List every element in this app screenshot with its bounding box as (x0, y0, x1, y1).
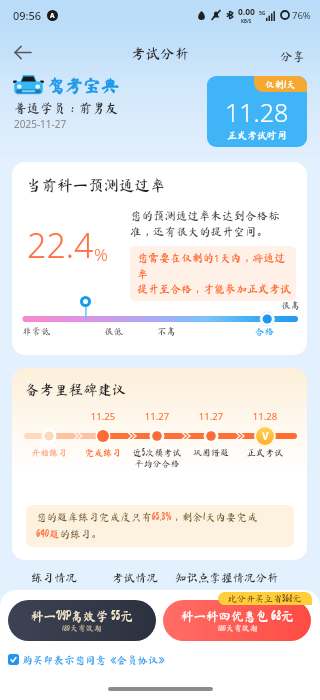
staticText: 11.25 (86, 410, 120, 423)
staticText: 备考里程碑建议 (25, 382, 127, 397)
button[interactable]: 考试情况 (112, 572, 158, 583)
button[interactable]: 知识点掌握情况分析 (175, 572, 279, 583)
staticText: 很低 (104, 327, 124, 336)
staticText: 2025-11-27 (14, 117, 67, 131)
staticText: 22.4 (27, 222, 94, 268)
staticText: 当前科一预测通过率 (26, 177, 166, 193)
staticText: 您的题库练习完成度只有65.3%，剩余1天内要完成 640题的练习。 (36, 512, 258, 539)
staticText: 巩固错题 (184, 448, 238, 457)
button[interactable]: 仅剩1天 (207, 76, 307, 147)
staticText: 您需要在仅剩的1天内，将通过率 提升至合格，才能参加正式考试 (137, 252, 291, 295)
staticText: 考试分析 (131, 46, 189, 61)
staticText: 完成练习 (76, 448, 130, 457)
staticText: A (50, 11, 55, 20)
staticText: 11.28 (225, 95, 289, 129)
staticText: 合格 (255, 327, 275, 336)
staticText: 仅剩1天 (265, 80, 296, 89)
staticText: 76% (292, 9, 311, 22)
staticText: 09:56 (13, 8, 42, 23)
staticText: 11.27 (140, 410, 174, 423)
staticText: % (94, 243, 108, 266)
staticText: 5G (259, 10, 266, 17)
staticText: 11.28 (248, 410, 282, 423)
staticText: 购买即表示您同意《会员协议》 (22, 655, 169, 665)
staticText: 您的预测通过率未达到合格标 准，还有很大的提升空间。 (130, 210, 280, 237)
staticText: 正式考试时间 (227, 130, 287, 140)
staticText: 很高 (281, 301, 301, 310)
staticText: 180天有效期 (62, 624, 102, 632)
button[interactable]: 科一科四优惠包 68元 (163, 600, 311, 641)
staticText: 11.27 (194, 410, 228, 423)
staticText: 开始练习 (22, 448, 76, 457)
staticText: 非常低 (22, 327, 51, 336)
button[interactable]: 练习情况 (31, 572, 77, 583)
staticText: 驾考宝典 (47, 76, 119, 94)
staticText: 正式考试 (238, 448, 292, 457)
staticText: 0.00 (238, 6, 255, 18)
button[interactable]: 科一VIP高效学 55元 (8, 600, 156, 641)
staticText: V (262, 429, 269, 443)
staticText: 不高 (157, 327, 177, 336)
staticText: 分享 (280, 50, 306, 63)
staticText: 科一VIP高效学 55元 (31, 610, 133, 623)
staticText: 普通学员：前男友 (14, 102, 119, 115)
staticText: 近5次模考试 平均分合格 (130, 448, 184, 468)
button[interactable]: Back (7, 37, 37, 67)
button[interactable]: 购买即表示您同意《会员协议》 (6, 652, 171, 667)
staticText: 科一科四优惠包 68元 (181, 610, 294, 623)
staticText: 比分开买立省368元 (228, 594, 302, 603)
staticText: KB/S (241, 18, 252, 24)
button[interactable]: 分享 (278, 47, 308, 66)
staticText: 180天有效期 (218, 624, 258, 632)
